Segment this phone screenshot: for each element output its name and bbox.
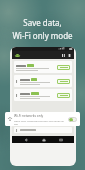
button[interactable]: [14, 119, 72, 125]
button[interactable]: App icon: [14, 52, 20, 58]
button[interactable]: Wi-Fi networks only: [5, 112, 80, 126]
button[interactable]: [57, 93, 70, 98]
button[interactable]: [14, 89, 72, 101]
button[interactable]: Home: [40, 136, 47, 143]
button[interactable]: Wi-Fi only toggle: [68, 117, 77, 122]
button[interactable]: Pause: [60, 52, 66, 58]
staticText: Save data,: [23, 17, 62, 28]
staticText: Wi-Fi only mode: [12, 30, 73, 41]
button[interactable]: [57, 65, 70, 70]
button[interactable]: Back: [22, 136, 29, 143]
staticText: Open slots. Download torrents only when …: [14, 119, 65, 125]
button[interactable]: [14, 127, 72, 133]
button[interactable]: [57, 79, 70, 84]
button[interactable]: [14, 61, 72, 73]
button[interactable]: [14, 75, 72, 87]
button[interactable]: Menu: [66, 52, 72, 58]
staticText: Wi-Fi networks only: [14, 114, 44, 118]
button[interactable]: Recents: [57, 136, 64, 143]
